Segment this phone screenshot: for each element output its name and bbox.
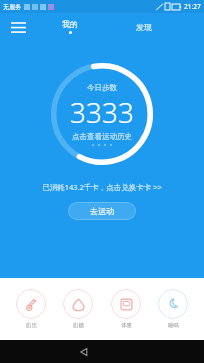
- button[interactable]: 体重: [109, 287, 143, 331]
- staticText: 血糖: [73, 322, 84, 329]
- button[interactable]: 我的: [52, 16, 88, 37]
- staticText: 无服务: [3, 3, 21, 11]
- staticText: 点击查看运动历史: [72, 132, 132, 141]
- button[interactable]: Back: [64, 340, 104, 363]
- button[interactable]: 发现: [126, 19, 162, 35]
- button[interactable]: 查看运动历史: [50, 62, 154, 166]
- button[interactable]: 已消耗143.2千卡，点击兑换卡卡 >>: [34, 180, 170, 194]
- staticText: 今日步数: [87, 83, 117, 92]
- staticText: 21:27: [184, 2, 201, 11]
- staticText: 发现: [136, 22, 152, 32]
- button[interactable]: 睡眠: [156, 287, 190, 331]
- staticText: 3333: [70, 93, 134, 131]
- button[interactable]: 血糖: [61, 287, 95, 331]
- staticText: 去运动: [90, 206, 114, 216]
- button[interactable]: 血压: [14, 287, 48, 331]
- staticText: 我的: [62, 19, 78, 29]
- staticText: 睡眠: [168, 322, 179, 329]
- button[interactable]: Menu: [6, 15, 30, 39]
- button[interactable]: 去运动: [68, 202, 136, 220]
- staticText: 血压: [26, 322, 37, 329]
- staticText: 体重: [121, 322, 132, 329]
